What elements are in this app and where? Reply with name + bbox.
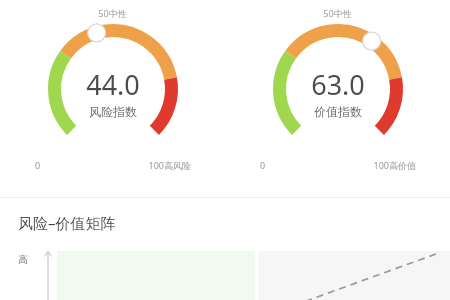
staticText: 63.0 bbox=[311, 66, 365, 103]
staticText: 风险指数 bbox=[89, 104, 137, 119]
button[interactable]: 风险指数 bbox=[0, 7, 225, 171]
staticText: 44.0 bbox=[86, 66, 140, 103]
staticText: 风险–价值矩阵 bbox=[18, 213, 116, 233]
staticText: 0 bbox=[35, 159, 148, 171]
staticText: 高 bbox=[18, 253, 28, 266]
staticText: 100高价值 bbox=[373, 159, 416, 171]
staticText: 100高风险 bbox=[148, 159, 191, 171]
staticText: 50中性 bbox=[323, 7, 352, 19]
staticText: 50中性 bbox=[98, 7, 127, 19]
staticText: 价值指数 bbox=[314, 104, 362, 119]
staticText: 0 bbox=[260, 159, 373, 171]
button[interactable]: 价值指数 bbox=[225, 7, 450, 171]
